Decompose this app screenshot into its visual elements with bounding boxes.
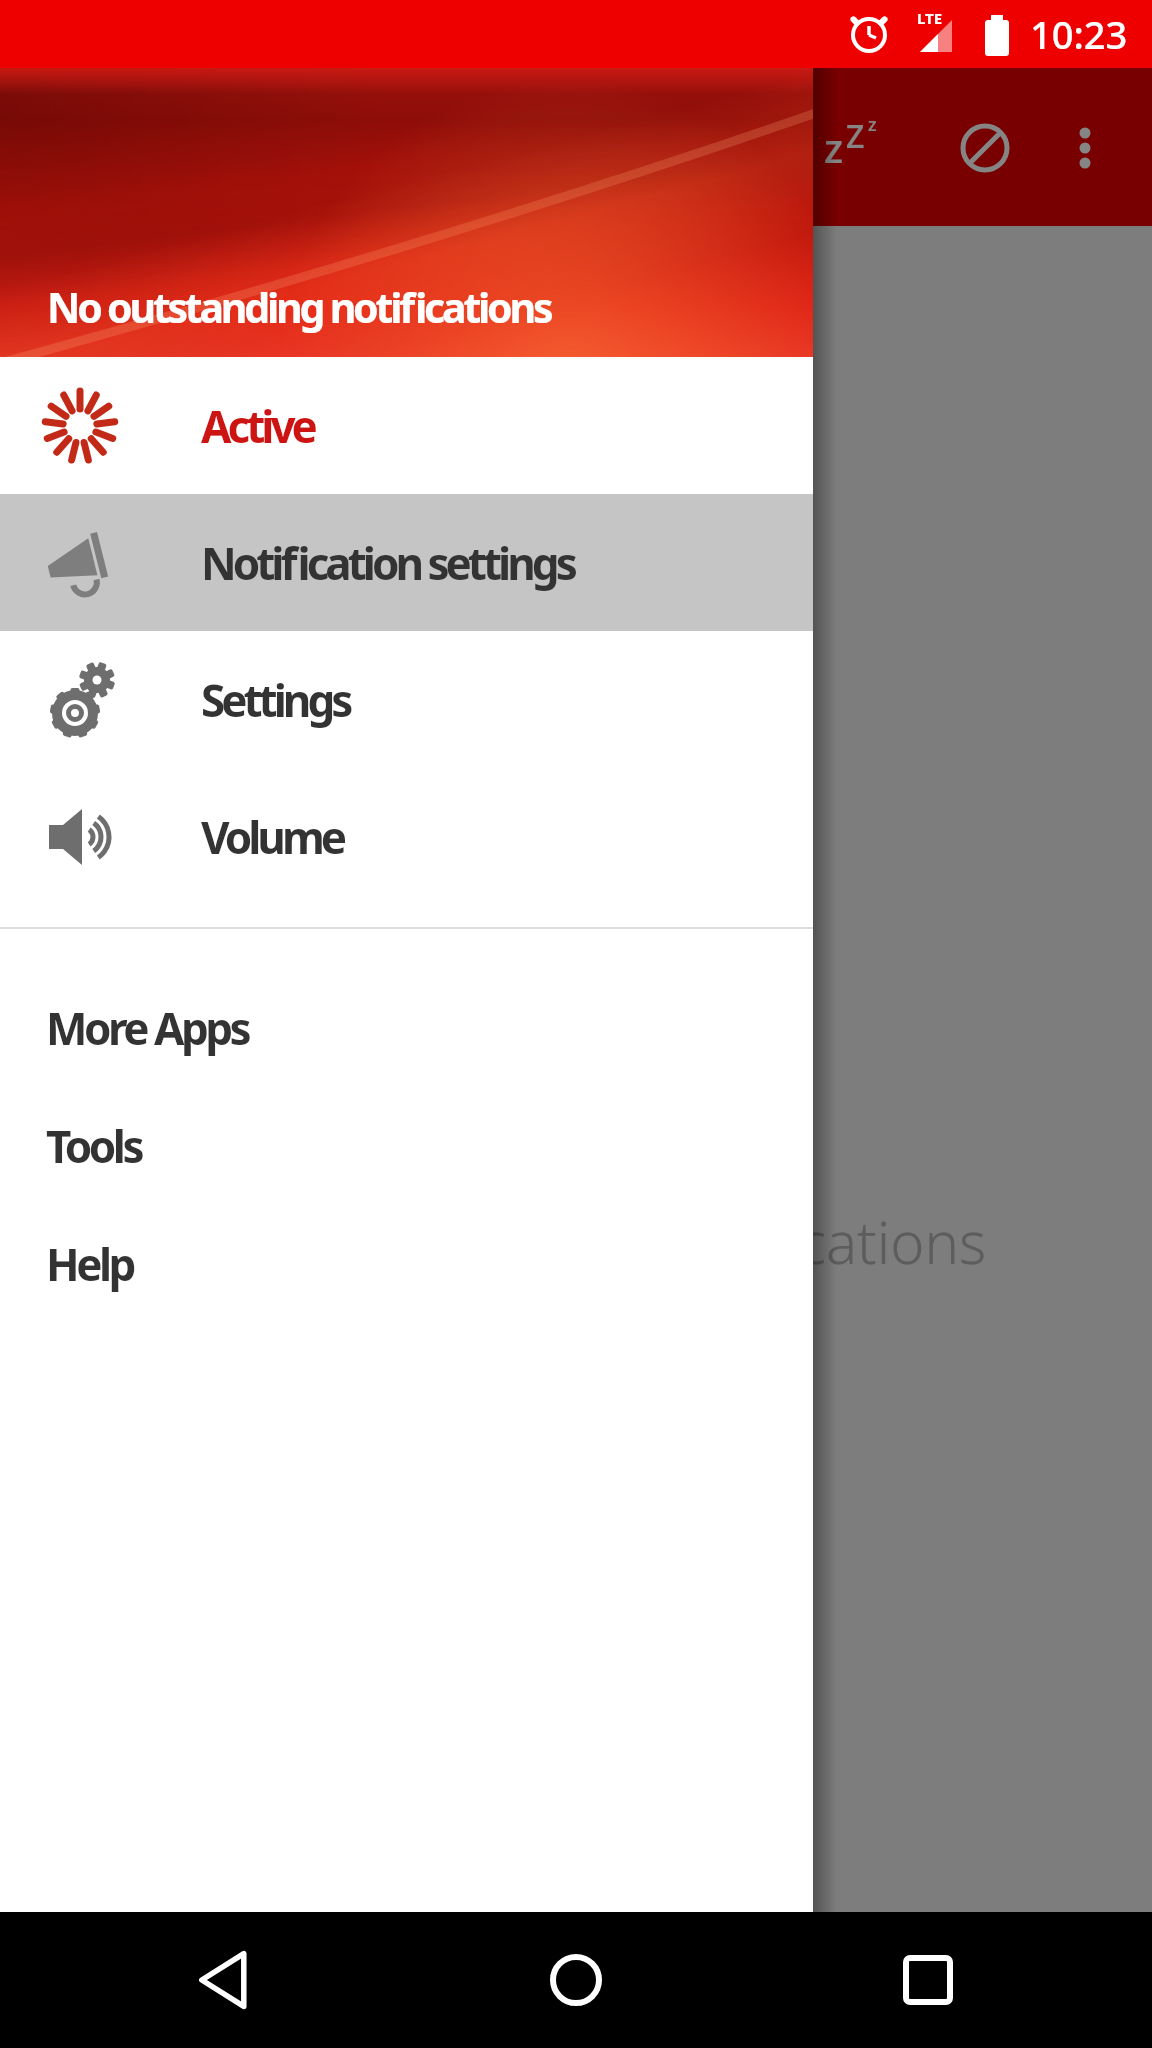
staticText: z bbox=[824, 120, 844, 174]
staticText: 10:23 bbox=[1030, 8, 1128, 60]
button[interactable]: Active bbox=[0, 357, 813, 494]
staticText: No outstanding notifications bbox=[240, 1202, 987, 1281]
staticText: More Apps bbox=[46, 998, 249, 1058]
button[interactable]: No outstanding notifications bbox=[0, 68, 813, 357]
staticText: Tools bbox=[46, 1116, 142, 1176]
staticText: No outstanding notifications bbox=[47, 279, 551, 335]
staticText: LTE bbox=[917, 8, 943, 28]
button[interactable]: Settings bbox=[0, 631, 813, 768]
button[interactable]: Help bbox=[0, 1205, 813, 1323]
staticText: z bbox=[868, 112, 877, 137]
button[interactable] bbox=[526, 1930, 626, 2030]
button[interactable]: More Apps bbox=[0, 969, 813, 1087]
staticText: Active bbox=[201, 396, 314, 456]
staticText: Settings bbox=[201, 670, 350, 730]
staticText: Volume bbox=[201, 807, 344, 867]
button[interactable]: Tools bbox=[0, 1087, 813, 1205]
staticText: Notification settings bbox=[201, 533, 574, 593]
button[interactable] bbox=[177, 1930, 277, 2030]
staticText: Help bbox=[46, 1234, 133, 1294]
staticText: Z bbox=[846, 114, 865, 158]
button[interactable]: Volume bbox=[0, 768, 813, 905]
button[interactable]: Notification settings bbox=[0, 494, 813, 631]
button[interactable] bbox=[878, 1930, 978, 2030]
